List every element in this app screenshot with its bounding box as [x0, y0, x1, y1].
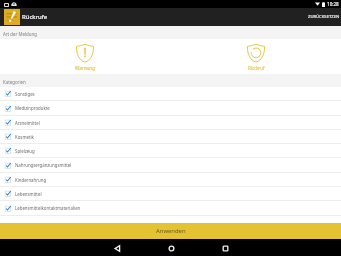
- staticText: Rückrufe: [22, 13, 48, 21]
- staticText: Lebensmittelkontaktmaterialien: [15, 205, 81, 211]
- staticText: Rückruf: [248, 65, 265, 71]
- staticText: Kindernahrung: [15, 177, 47, 183]
- button[interactable]: Back: [90, 239, 144, 256]
- button[interactable]: Spielzeug: [0, 144, 341, 158]
- button[interactable]: Sonstiges: [0, 87, 341, 101]
- button[interactable]: Home: [144, 239, 198, 256]
- button[interactable]: Rückruf: [240, 42, 272, 72]
- button[interactable]: Lebensmittel: [0, 187, 341, 201]
- staticText: Kosmetik: [15, 134, 34, 140]
- staticText: Sonstiges: [15, 91, 35, 97]
- button[interactable]: Medizinprodukte: [0, 101, 341, 116]
- staticText: Lebensmittel: [15, 191, 42, 197]
- button[interactable]: Lebensmittelkontaktmaterialien: [0, 201, 341, 216]
- staticText: ZURÜCKSETZEN: [308, 14, 340, 20]
- staticText: Nahrungsergänzungsmittel: [15, 162, 72, 168]
- staticText: Spielzeug: [15, 148, 35, 154]
- staticText: Kategorien: [3, 79, 26, 85]
- button[interactable]: ZURÜCKSETZEN: [304, 11, 341, 23]
- staticText: Anwenden: [156, 227, 186, 235]
- staticText: Medizinprodukte: [15, 105, 50, 111]
- button[interactable]: Anwenden: [0, 223, 341, 239]
- staticText: Art der Meldung: [3, 31, 37, 37]
- button[interactable]: Arzneimittel: [0, 116, 341, 130]
- staticText: 10:28: [327, 1, 339, 7]
- button[interactable]: Recent apps: [198, 239, 252, 256]
- button[interactable]: Warnung: [69, 42, 101, 72]
- button[interactable]: Kosmetik: [0, 130, 341, 144]
- button[interactable]: Kindernahrung: [0, 173, 341, 187]
- staticText: Warnung: [75, 65, 95, 71]
- button[interactable]: Nahrungsergänzungsmittel: [0, 158, 341, 173]
- staticText: Arzneimittel: [15, 120, 40, 126]
